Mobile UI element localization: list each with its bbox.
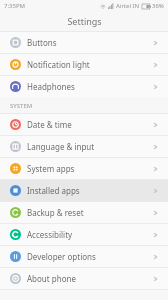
button[interactable]: Headphones	[0, 76, 168, 97]
staticText: Date & time	[27, 119, 153, 130]
staticText: Language & input	[27, 141, 153, 152]
staticText: 7:35PM	[4, 2, 25, 10]
button[interactable]: Buttons	[0, 32, 168, 53]
button[interactable]: Installed apps	[0, 180, 168, 201]
staticText: SYSTEM	[10, 102, 33, 110]
button[interactable]: Developer options	[0, 246, 168, 267]
button[interactable]: System apps	[0, 158, 168, 179]
staticText: 36%	[152, 2, 164, 10]
staticText: Backup & reset	[27, 207, 153, 218]
staticText: About phone	[27, 273, 153, 284]
staticText: Airtel IN	[116, 2, 140, 10]
button[interactable]: Language & input	[0, 136, 168, 157]
staticText: System apps	[27, 163, 153, 174]
button[interactable]: Date & time	[0, 114, 168, 135]
button[interactable]: About phone	[0, 268, 168, 289]
staticText: Developer options	[27, 251, 153, 262]
staticText: Notification light	[27, 59, 153, 70]
staticText: Buttons	[27, 37, 153, 48]
staticText: Headphones	[27, 81, 153, 92]
button[interactable]: Notification light	[0, 54, 168, 75]
button[interactable]: Backup & reset	[0, 202, 168, 223]
staticText: Accessibility	[27, 229, 153, 240]
button[interactable]: Accessibility	[0, 224, 168, 245]
staticText: Installed apps	[27, 185, 153, 196]
staticText: Settings	[67, 15, 102, 27]
